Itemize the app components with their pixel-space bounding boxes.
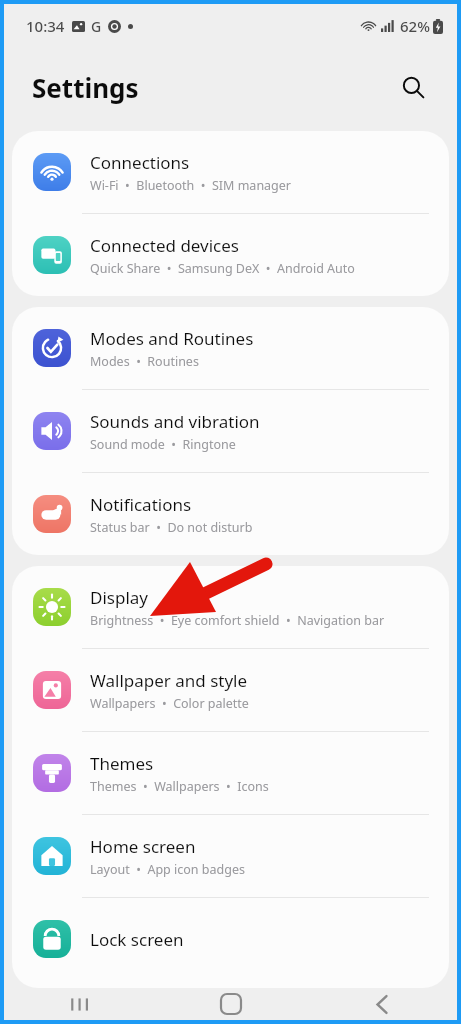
staticText: 62%	[400, 16, 430, 36]
staticText: Home screen	[90, 835, 196, 858]
staticText: Display	[90, 586, 148, 609]
button[interactable]: Home screen	[12, 815, 449, 897]
staticText: Notifications	[90, 493, 192, 516]
staticText: G	[91, 17, 102, 36]
button[interactable]: Modes and Routines	[12, 307, 449, 389]
button[interactable]: Connected devices	[12, 214, 449, 296]
staticText: Wallpapers • Color palette	[90, 695, 249, 712]
button[interactable]: Sounds and vibration	[12, 390, 449, 472]
button[interactable]: Connections	[12, 131, 449, 213]
staticText: Themes • Wallpapers • Icons	[90, 778, 269, 795]
staticText: Themes	[90, 752, 154, 775]
staticText: Wi-Fi • Bluetooth • SIM manager	[90, 177, 292, 194]
button[interactable]: Lock screen	[12, 898, 449, 980]
staticText: Modes • Routines	[90, 353, 199, 370]
button[interactable]: Search	[391, 65, 435, 109]
staticText: Status bar • Do not disturb	[90, 519, 253, 536]
button[interactable]: Display	[12, 566, 449, 648]
button[interactable]: Notifications	[12, 473, 449, 555]
button[interactable]: Wallpaper and style	[12, 649, 449, 731]
staticText: Lock screen	[90, 928, 184, 951]
staticText: Brightness • Eye comfort shield • Naviga…	[90, 612, 385, 629]
staticText: Modes and Routines	[90, 327, 254, 350]
staticText: Layout • App icon badges	[90, 861, 245, 878]
staticText: Connected devices	[90, 234, 240, 257]
button[interactable]: Back	[306, 988, 457, 1020]
staticText: Wallpaper and style	[90, 669, 248, 692]
button[interactable]: Recent apps	[4, 988, 155, 1020]
staticText: Connections	[90, 151, 190, 174]
button[interactable]: Themes	[12, 732, 449, 814]
staticText: Quick Share • Samsung DeX • Android Auto	[90, 260, 355, 277]
staticText: 10:34	[26, 16, 65, 36]
button[interactable]: Home	[155, 988, 306, 1020]
staticText: Sounds and vibration	[90, 410, 260, 433]
staticText: Sound mode • Ringtone	[90, 436, 236, 453]
staticText: Settings	[32, 70, 139, 105]
